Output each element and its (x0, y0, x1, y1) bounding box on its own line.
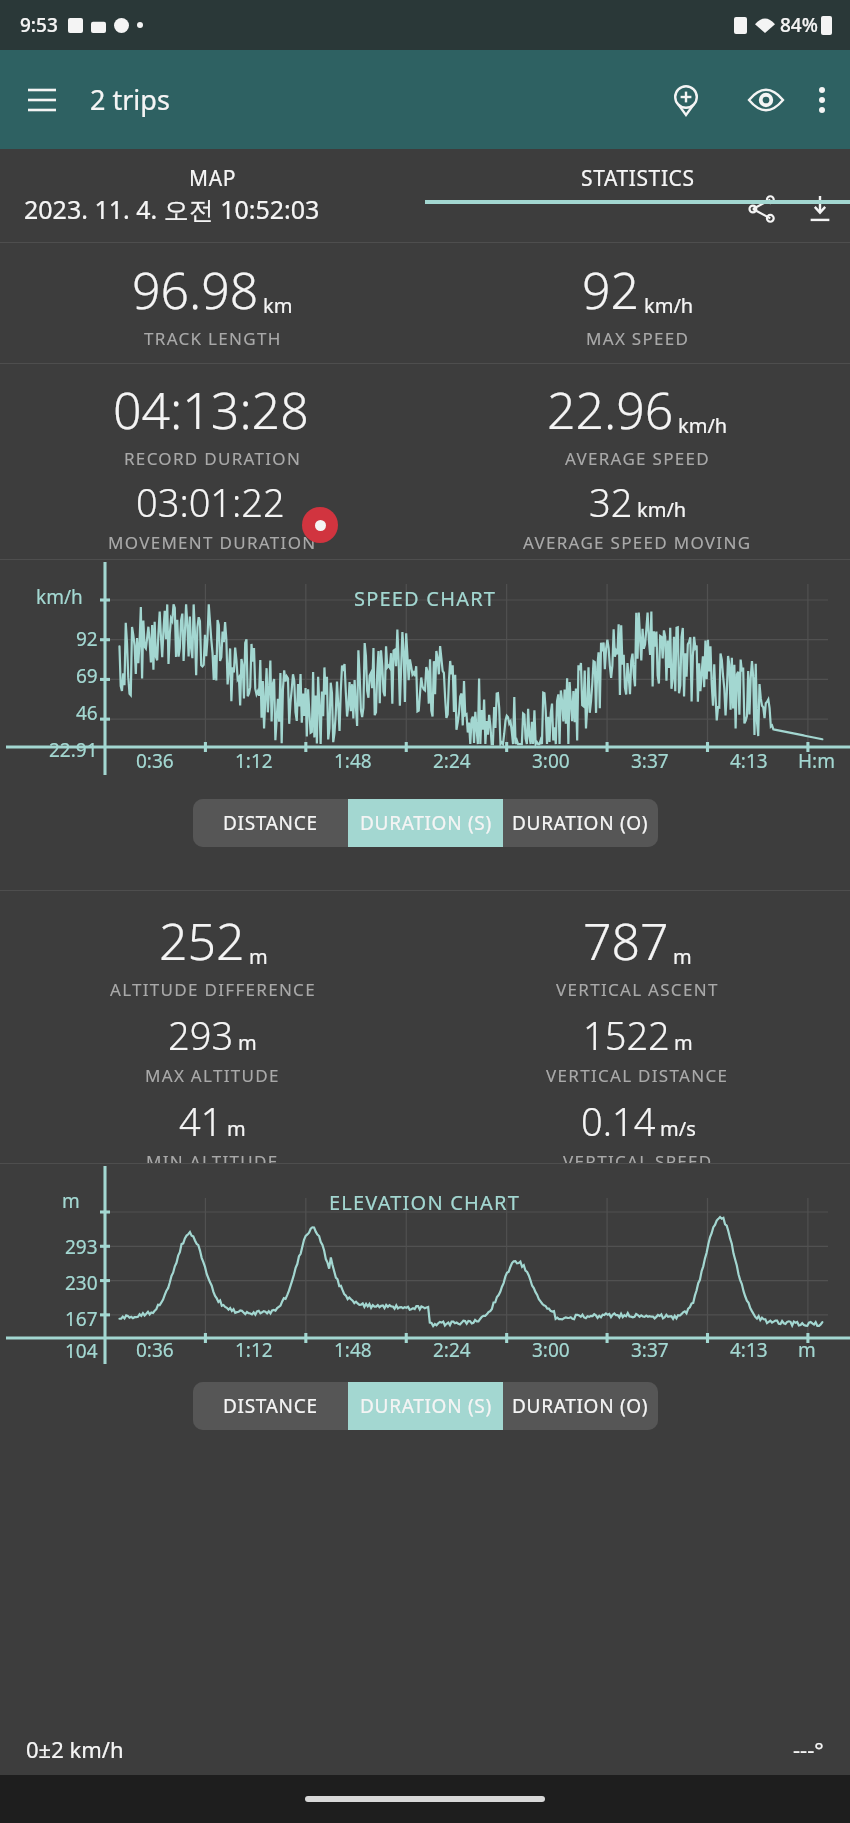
staticText: 22.96 (547, 376, 674, 444)
staticText: 104 (65, 1338, 98, 1364)
button[interactable]: DURATION (O) (503, 1382, 658, 1430)
button[interactable]: DISTANCE (193, 799, 348, 847)
staticText: 0:36 (136, 1337, 174, 1363)
button[interactable]: STATISTICS (425, 158, 850, 198)
staticText: 0±2 km/h (26, 1734, 124, 1764)
staticText: 3:00 (532, 748, 570, 774)
staticText: 252 (159, 907, 245, 975)
button[interactable]: DURATION (O) (503, 799, 658, 847)
staticText: DURATION (S) (360, 810, 492, 836)
staticText: MAX ALTITUDE (145, 1064, 280, 1087)
staticText: 293 (168, 1009, 234, 1061)
button[interactable]: Add marker (658, 72, 714, 128)
button[interactable]: Record (302, 507, 338, 543)
staticText: SPEED CHART (354, 585, 497, 612)
staticText: RECORD DURATION (124, 447, 302, 470)
button[interactable]: DURATION (S) (348, 799, 503, 847)
button[interactable]: Menu (14, 72, 70, 128)
staticText: DISTANCE (223, 810, 318, 836)
staticText: 3:00 (532, 1337, 570, 1363)
staticText: TRACK LENGTH (144, 327, 282, 350)
staticText: 1:48 (334, 1337, 372, 1363)
staticText: ELEVATION CHART (329, 1189, 521, 1216)
staticText: km/h (637, 496, 687, 523)
staticText: m (238, 1029, 257, 1056)
button[interactable]: More options (794, 72, 850, 128)
staticText: 1:48 (334, 748, 372, 774)
staticText: VERTICAL DISTANCE (546, 1064, 729, 1087)
staticText: 46 (76, 700, 98, 726)
staticText: AVERAGE SPEED (565, 447, 711, 470)
staticText: 1:12 (235, 748, 273, 774)
staticText: m (798, 1337, 816, 1363)
staticText: DURATION (O) (512, 810, 649, 836)
staticText: 4:13 (730, 748, 768, 774)
staticText: 32 (589, 476, 633, 528)
staticText: m (227, 1115, 246, 1142)
button[interactable]: Download (798, 183, 842, 235)
staticText: 2 trips (90, 81, 170, 118)
staticText: 293 (65, 1234, 98, 1260)
staticText: km (263, 292, 293, 319)
staticText: 92 (76, 626, 98, 652)
staticText: 3:37 (631, 1337, 669, 1363)
staticText: km/h (36, 584, 83, 610)
staticText: 84% (780, 12, 818, 38)
staticText: 0:36 (136, 748, 174, 774)
staticText: m (249, 943, 268, 970)
staticText: m (674, 1029, 693, 1056)
staticText: VERTICAL ASCENT (556, 978, 719, 1001)
staticText: ALTITUDE DIFFERENCE (110, 978, 316, 1001)
staticText: 1:12 (235, 1337, 273, 1363)
button[interactable]: MAP (0, 158, 425, 198)
staticText: 230 (65, 1270, 98, 1296)
staticText: 22.91 (49, 737, 98, 763)
staticText: 04:13:28 (113, 376, 309, 444)
staticText: 2:24 (433, 1337, 471, 1363)
button[interactable]: DISTANCE (193, 1382, 348, 1430)
staticText: DURATION (S) (360, 1393, 492, 1419)
staticText: 3:37 (631, 748, 669, 774)
staticText: VERTICAL SPEED (563, 1150, 713, 1163)
staticText: STATISTICS (581, 164, 695, 193)
staticText: 9:53 (20, 12, 58, 38)
staticText: 96.98 (132, 256, 259, 324)
staticText: DURATION (O) (512, 1393, 649, 1419)
staticText: 41 (179, 1095, 223, 1147)
staticText: 92 (582, 256, 640, 324)
staticText: 1522 (583, 1009, 670, 1061)
staticText: m (62, 1188, 80, 1214)
staticText: 167 (65, 1306, 98, 1332)
staticText: ---° (793, 1734, 824, 1764)
button[interactable]: Show (738, 72, 794, 128)
staticText: km/h (678, 412, 728, 439)
button[interactable]: DURATION (S) (348, 1382, 503, 1430)
staticText: DISTANCE (223, 1393, 318, 1419)
staticText: H:m (798, 748, 835, 774)
staticText: 4:13 (730, 1337, 768, 1363)
staticText: MIN ALTITUDE (146, 1150, 279, 1163)
staticText: 2023. 11. 4. 오전 10:52:03 (24, 192, 320, 226)
staticText: MAP (189, 164, 236, 193)
staticText: MOVEMENT DURATION (108, 531, 317, 554)
staticText: 69 (76, 663, 98, 689)
staticText: AVERAGE SPEED MOVING (523, 531, 752, 554)
staticText: 787 (583, 907, 669, 975)
staticText: 2:24 (433, 748, 471, 774)
staticText: km/h (644, 292, 694, 319)
staticText: MAX SPEED (586, 327, 690, 350)
staticText: m (673, 943, 692, 970)
button[interactable]: Share (736, 183, 788, 235)
staticText: 03:01:22 (136, 476, 285, 528)
staticText: m/s (660, 1115, 696, 1142)
staticText: 0.14 (581, 1095, 656, 1147)
